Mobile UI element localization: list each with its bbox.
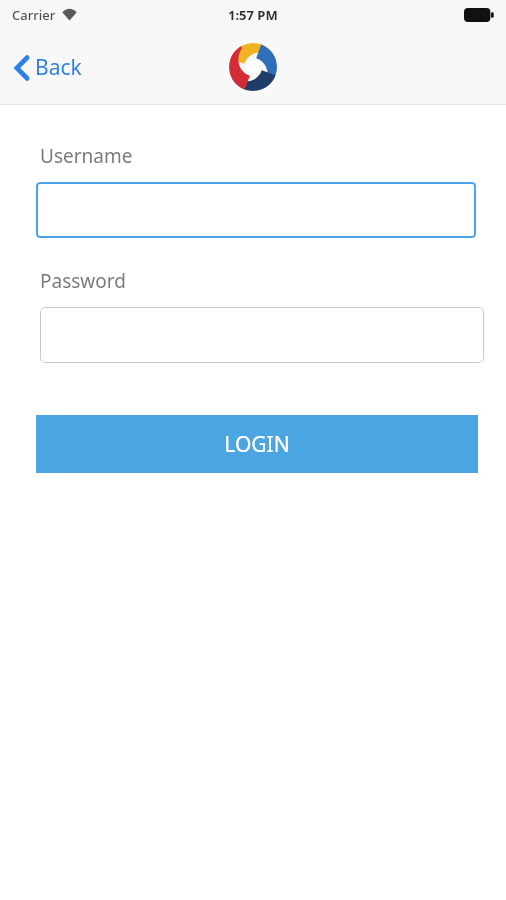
button[interactable]: LOGIN: [36, 415, 478, 473]
staticText: 1:57 PM: [228, 6, 278, 24]
staticText: LOGIN: [224, 430, 290, 459]
button[interactable]: [40, 307, 484, 363]
staticText: Back: [35, 53, 82, 82]
staticText: Carrier: [12, 6, 56, 24]
staticText: Password: [40, 268, 126, 294]
button[interactable]: Back: [10, 47, 86, 88]
button[interactable]: [36, 182, 476, 238]
staticText: Username: [40, 143, 133, 169]
